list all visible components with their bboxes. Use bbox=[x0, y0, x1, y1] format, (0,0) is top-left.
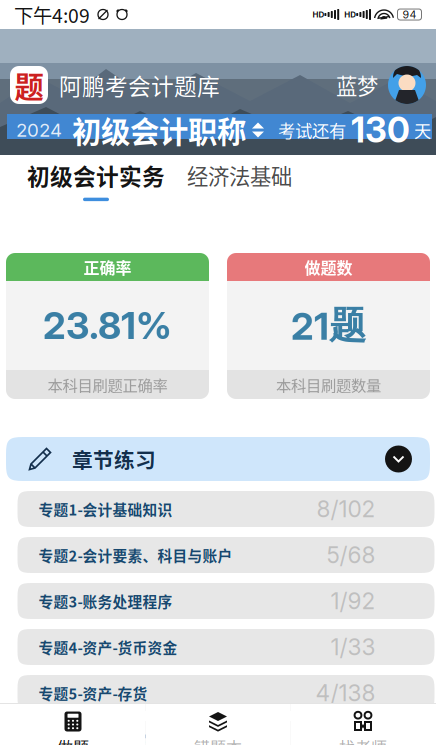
staticText: 考试还有 bbox=[278, 117, 346, 143]
staticText: HD bbox=[344, 10, 356, 19]
staticText: 专题6-资产-固定资产 bbox=[38, 728, 177, 745]
button[interactable]: 章节练习 bbox=[6, 437, 430, 481]
staticText: 蓝梦 bbox=[336, 70, 378, 100]
button[interactable]: 专题1-会计基础知识 bbox=[9, 491, 426, 527]
staticText: 1/33 bbox=[330, 633, 375, 661]
button[interactable]: 找老师 bbox=[290, 704, 435, 745]
staticText: 下午4:09 bbox=[14, 0, 90, 28]
staticText: 专题4-资产-货币资金 bbox=[38, 636, 177, 658]
button[interactable]: 经济法基础 bbox=[187, 160, 292, 202]
staticText: 专题3-账务处理程序 bbox=[38, 590, 172, 612]
staticText: 94 bbox=[402, 8, 416, 21]
staticText: 2024 bbox=[16, 119, 62, 141]
button[interactable]: 错题本 bbox=[145, 704, 290, 745]
button[interactable]: 专题6-资产-固定资产 bbox=[9, 721, 426, 745]
staticText: 专题5-资产-存货 bbox=[38, 682, 147, 704]
staticText: 天 bbox=[414, 117, 431, 143]
button[interactable]: 正确率 bbox=[6, 253, 209, 399]
staticText: 做题 bbox=[57, 735, 89, 745]
staticText: 0/96 bbox=[325, 725, 375, 745]
button[interactable]: 专题3-账务处理程序 bbox=[9, 583, 426, 619]
staticText: 阿鹏考会计题库 bbox=[59, 69, 220, 101]
staticText: 5/68 bbox=[326, 541, 375, 569]
staticText: 23.81% bbox=[43, 303, 172, 348]
staticText: 本科目刷题正确率 bbox=[47, 373, 167, 396]
staticText: 8/102 bbox=[316, 495, 375, 523]
staticText: 1/92 bbox=[330, 587, 375, 615]
staticText: 专题1-会计基础知识 bbox=[38, 498, 172, 520]
staticText: 130 bbox=[351, 109, 410, 151]
staticText: 初级会计实务 bbox=[27, 159, 165, 192]
staticText: 题 bbox=[14, 64, 43, 106]
staticText: 正确率 bbox=[83, 255, 131, 279]
button[interactable]: 做题 bbox=[0, 704, 145, 745]
button[interactable]: 专题4-资产-货币资金 bbox=[9, 629, 426, 665]
staticText: 章节练习 bbox=[72, 444, 156, 474]
staticText: 找老师 bbox=[339, 735, 387, 745]
button[interactable]: 专题2-会计要素、科目与账户 bbox=[9, 537, 426, 573]
staticText: 经济法基础 bbox=[187, 160, 292, 191]
staticText: 做题数 bbox=[304, 255, 352, 279]
button[interactable]: 初级会计实务 bbox=[27, 159, 165, 203]
staticText: HD bbox=[312, 10, 324, 19]
staticText: 错题本 bbox=[194, 735, 242, 745]
staticText: 初级会计职称 bbox=[72, 109, 246, 151]
staticText: 本科目刷题数量 bbox=[276, 373, 381, 396]
staticText: 专题2-会计要素、科目与账户 bbox=[38, 544, 232, 566]
button[interactable]: 做题数 bbox=[227, 253, 430, 399]
staticText: 21题 bbox=[291, 302, 366, 349]
button[interactable]: 专题5-资产-存货 bbox=[9, 675, 426, 711]
staticText: 4/138 bbox=[315, 679, 375, 707]
